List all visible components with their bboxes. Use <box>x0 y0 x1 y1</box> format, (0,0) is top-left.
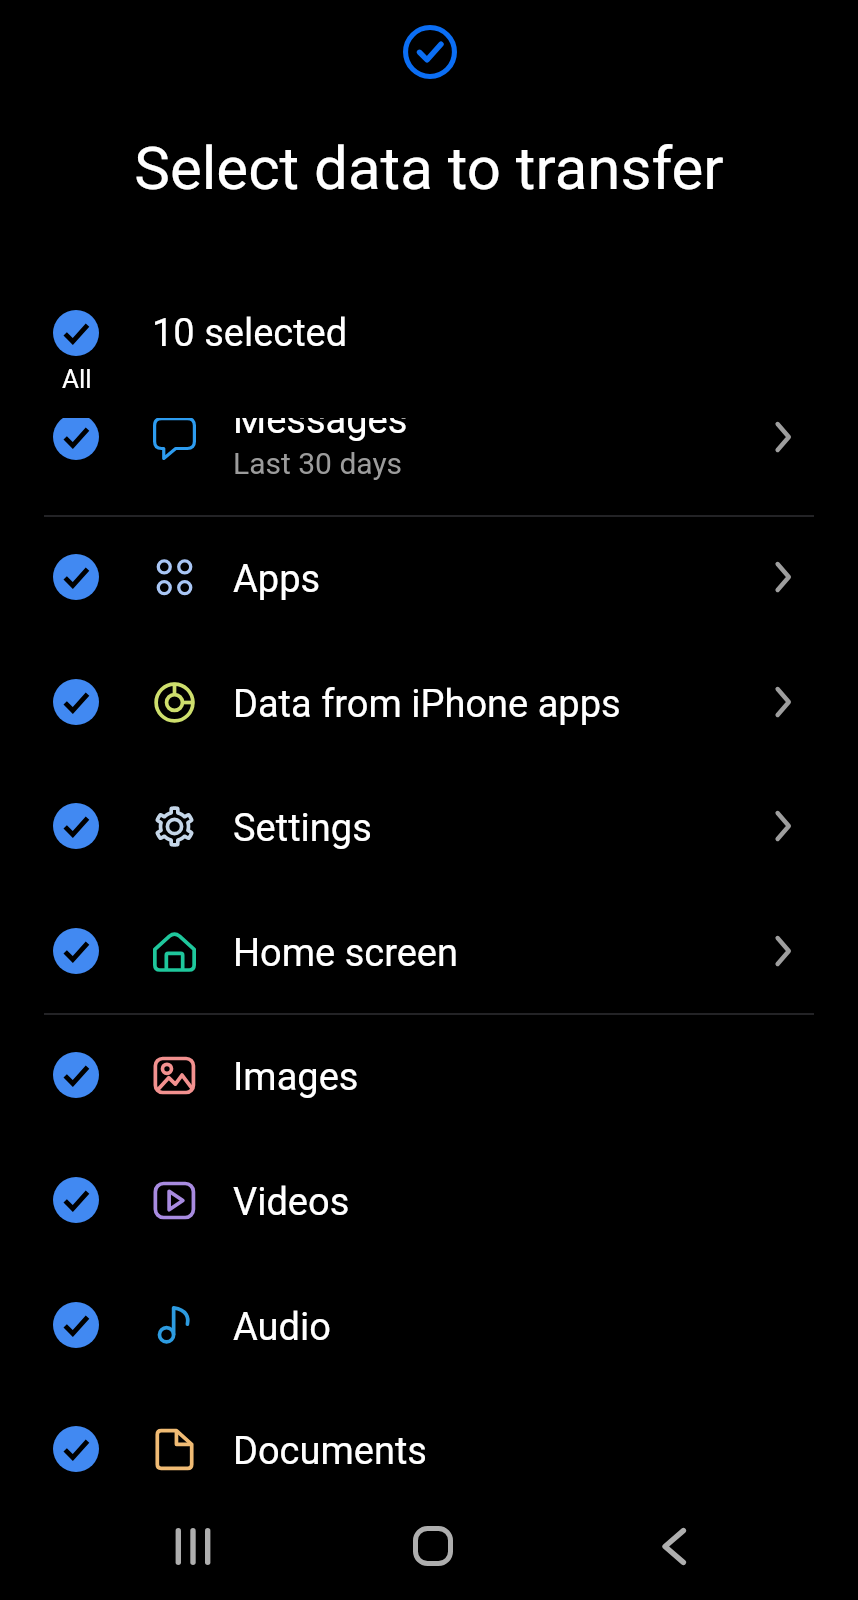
button[interactable]: Data from iPhone apps selected <box>53 679 99 725</box>
button[interactable]: Images selected <box>0 1013 858 1137</box>
button[interactable]: Open Messages <box>760 418 804 459</box>
staticText: Settings <box>233 806 372 851</box>
button[interactable]: Back <box>625 1500 720 1592</box>
staticText: Home screen <box>233 931 458 976</box>
staticText: Audio <box>233 1305 331 1350</box>
staticText: Select data to transfer <box>0 133 858 203</box>
button[interactable]: Audio selected <box>53 1302 99 1348</box>
button[interactable]: Smart Switch <box>403 25 457 79</box>
staticText: Documents <box>233 1429 427 1474</box>
staticText: Last 30 days <box>233 446 403 481</box>
button[interactable]: Open Apps <box>760 555 804 599</box>
staticText: Messages <box>233 418 408 443</box>
button[interactable]: Messages selected <box>0 418 858 500</box>
staticText: 10 selected <box>152 311 348 356</box>
button[interactable]: Select all <box>53 310 99 356</box>
button[interactable]: Open Data from iPhone apps <box>760 680 804 724</box>
button[interactable]: Videos selected <box>0 1138 858 1262</box>
button[interactable]: Images selected <box>53 1052 99 1098</box>
button[interactable]: Apps selected <box>53 554 99 600</box>
button[interactable]: Open Settings <box>760 804 804 848</box>
staticText: All <box>62 364 92 394</box>
staticText: Apps <box>233 557 321 602</box>
button[interactable]: Data from iPhone apps selected <box>0 640 858 764</box>
staticText: Data from iPhone apps <box>233 682 621 727</box>
button[interactable]: Videos selected <box>53 1177 99 1223</box>
button[interactable]: Settings selected <box>0 764 858 888</box>
button[interactable]: Messages selected <box>53 418 99 460</box>
button[interactable]: Recent apps <box>145 1500 240 1592</box>
button[interactable]: Settings selected <box>53 803 99 849</box>
button[interactable]: Audio selected <box>0 1263 858 1387</box>
button[interactable]: Documents selected <box>53 1426 99 1472</box>
button[interactable]: Documents selected <box>0 1387 858 1511</box>
button[interactable]: Home screen selected <box>0 889 858 1013</box>
button[interactable]: Open Home screen <box>760 929 804 973</box>
staticText: Videos <box>233 1180 350 1225</box>
staticText: Images <box>233 1055 359 1100</box>
button[interactable]: Apps selected <box>0 515 858 639</box>
button[interactable]: Home screen selected <box>53 928 99 974</box>
button[interactable]: Select all <box>0 296 858 396</box>
button[interactable]: Home <box>385 1500 480 1592</box>
